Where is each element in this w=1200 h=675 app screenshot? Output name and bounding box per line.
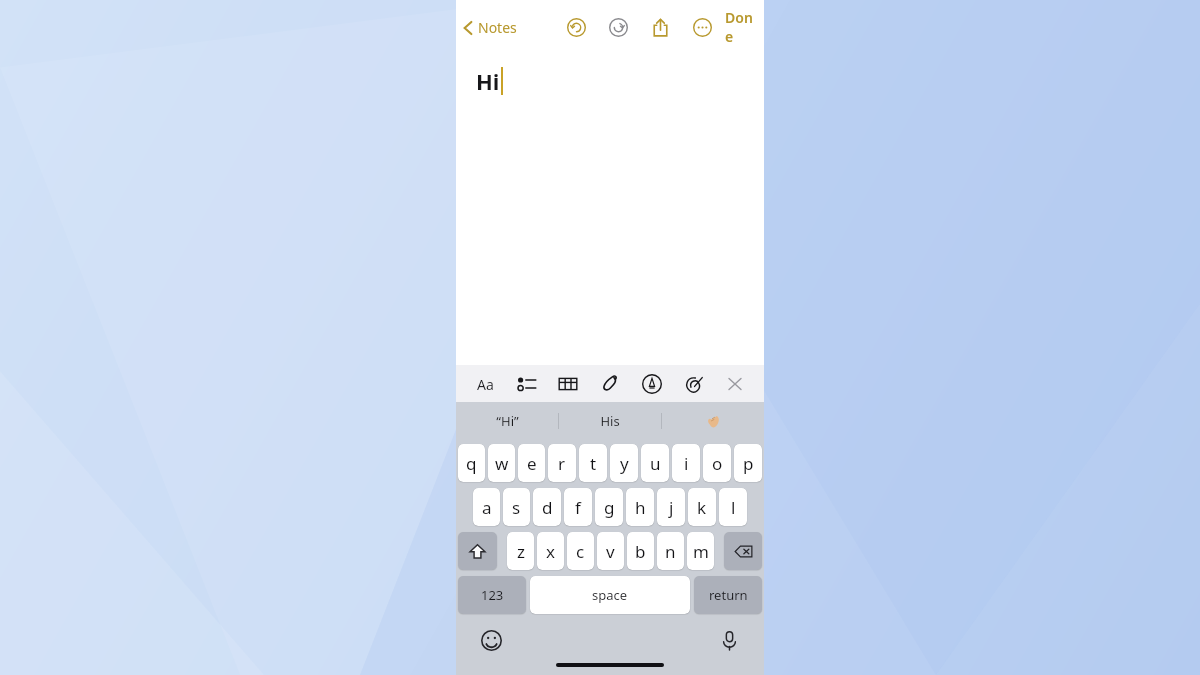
- staticText: n: [665, 540, 676, 563]
- staticText: t: [590, 452, 597, 475]
- button[interactable]: h: [626, 488, 654, 526]
- staticText: v: [606, 540, 615, 563]
- button[interactable]: v: [597, 532, 624, 570]
- button[interactable]: Markup: [637, 369, 667, 399]
- button[interactable]: g: [595, 488, 623, 526]
- staticText: e: [527, 452, 537, 475]
- staticText: d: [542, 496, 553, 519]
- staticText: g: [604, 496, 615, 519]
- button[interactable]: Redo: [605, 14, 631, 40]
- button[interactable]: Text format: [470, 369, 500, 399]
- button[interactable]: Attach: [595, 369, 625, 399]
- staticText: Hi: [476, 66, 500, 96]
- button[interactable]: a: [473, 488, 500, 526]
- button[interactable]: More: [689, 14, 715, 40]
- button[interactable]: Notes: [456, 14, 521, 41]
- button[interactable]: m: [687, 532, 714, 570]
- staticText: o: [712, 452, 723, 475]
- staticText: a: [482, 496, 492, 519]
- button[interactable]: w: [488, 444, 515, 482]
- button[interactable]: Close keyboard: [720, 369, 750, 399]
- button[interactable]: Dictation: [714, 625, 744, 655]
- button[interactable]: e: [518, 444, 545, 482]
- button[interactable]: l: [719, 488, 747, 526]
- staticText: b: [635, 540, 646, 563]
- staticText: “Hi”: [496, 412, 519, 430]
- button[interactable]: f: [564, 488, 592, 526]
- button[interactable]: Undo: [563, 14, 589, 40]
- staticText: l: [731, 496, 736, 519]
- button[interactable]: x: [537, 532, 564, 570]
- button[interactable]: j: [657, 488, 685, 526]
- staticText: f: [575, 496, 581, 519]
- staticText: u: [650, 452, 661, 475]
- button[interactable]: return: [694, 576, 762, 614]
- staticText: 123: [481, 586, 504, 604]
- button[interactable]: n: [657, 532, 684, 570]
- staticText: q: [466, 452, 477, 475]
- button[interactable]: z: [507, 532, 534, 570]
- staticText: Notes: [478, 18, 517, 37]
- button[interactable]: t: [579, 444, 607, 482]
- button[interactable]: “Hi”: [456, 402, 558, 439]
- staticText: y: [620, 452, 629, 475]
- button[interactable]: Waving hand emoji: [662, 402, 764, 439]
- staticText: j: [669, 496, 674, 519]
- staticText: h: [635, 496, 646, 519]
- button[interactable]: p: [734, 444, 762, 482]
- staticText: m: [693, 540, 709, 563]
- staticText: s: [512, 496, 521, 519]
- button[interactable]: i: [672, 444, 700, 482]
- staticText: Aa: [477, 375, 494, 394]
- button[interactable]: Share: [647, 14, 673, 40]
- button[interactable]: r: [548, 444, 576, 482]
- button[interactable]: Emoji: [476, 625, 506, 655]
- button[interactable]: Done: [715, 2, 764, 52]
- staticText: c: [576, 540, 585, 563]
- button[interactable]: space: [530, 576, 690, 614]
- staticText: w: [495, 452, 509, 475]
- button[interactable]: o: [703, 444, 731, 482]
- staticText: r: [558, 452, 566, 475]
- button[interactable]: d: [533, 488, 561, 526]
- button[interactable]: Backspace: [724, 532, 762, 570]
- button[interactable]: Shift: [458, 532, 497, 570]
- button[interactable]: b: [627, 532, 654, 570]
- staticText: p: [743, 452, 754, 475]
- staticText: x: [546, 540, 555, 563]
- staticText: z: [517, 540, 525, 563]
- button[interactable]: s: [503, 488, 530, 526]
- button[interactable]: y: [610, 444, 638, 482]
- staticText: space: [592, 586, 628, 604]
- staticText: i: [684, 452, 689, 475]
- staticText: k: [697, 496, 707, 519]
- staticText: return: [709, 586, 748, 604]
- button[interactable]: His: [559, 402, 661, 439]
- button[interactable]: Scribble: [678, 369, 708, 399]
- button[interactable]: c: [567, 532, 594, 570]
- button[interactable]: u: [641, 444, 669, 482]
- button[interactable]: Checklist: [512, 369, 542, 399]
- button[interactable]: q: [458, 444, 485, 482]
- staticText: Done: [725, 8, 754, 46]
- button[interactable]: Table: [553, 369, 583, 399]
- staticText: His: [600, 412, 620, 430]
- button[interactable]: k: [688, 488, 716, 526]
- button[interactable]: 123: [458, 576, 526, 614]
